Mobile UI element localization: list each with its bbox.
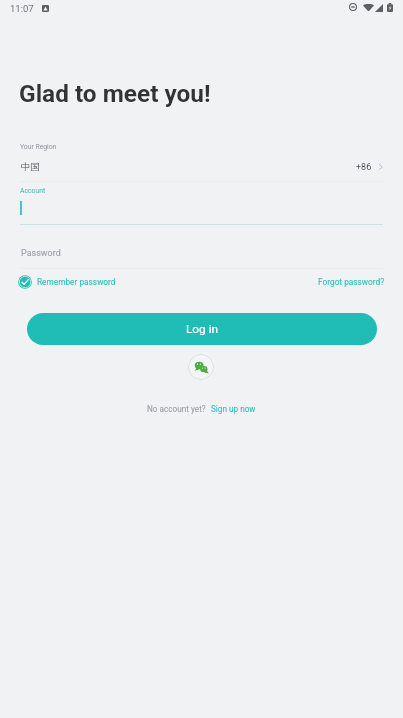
button[interactable]: Log in <box>27 313 377 345</box>
staticText: Forgot password? <box>318 277 385 287</box>
button[interactable]: Account <box>20 184 383 226</box>
staticText: +86 <box>356 162 372 173</box>
staticText: Log in <box>186 322 219 336</box>
staticText: 中国 <box>21 161 40 173</box>
staticText: Password <box>21 248 61 259</box>
button[interactable]: Forgot password? <box>318 273 385 290</box>
staticText: Glad to meet you! <box>19 79 211 108</box>
staticText: 11:07 <box>10 3 34 14</box>
button[interactable]: 中国 <box>20 158 383 176</box>
button[interactable]: Sign up now <box>211 404 256 414</box>
staticText: Your Region <box>20 143 57 151</box>
button[interactable]: Password <box>20 232 383 269</box>
staticText: No account yet? <box>147 404 206 414</box>
staticText: Remember password <box>37 277 116 287</box>
staticText: Sign up now <box>211 404 256 414</box>
button[interactable]: Remember password <box>18 273 116 290</box>
button[interactable]: Sign in with WeChat <box>188 354 214 380</box>
staticText: Account <box>20 187 46 195</box>
